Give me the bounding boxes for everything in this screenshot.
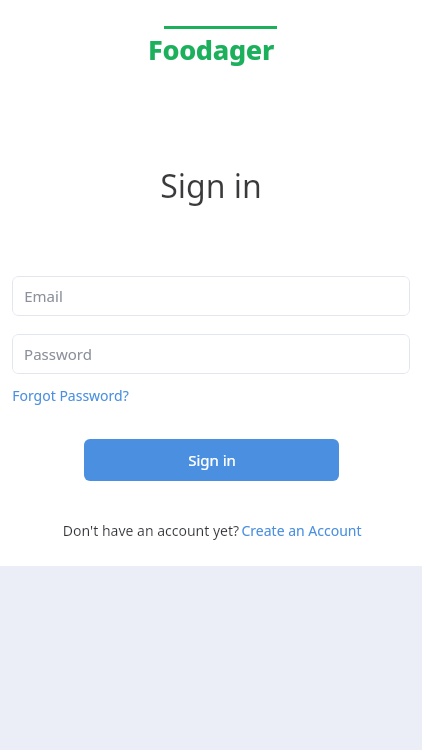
button[interactable]: Password bbox=[12, 334, 410, 374]
staticText: Forgot Password? bbox=[12, 386, 129, 405]
staticText: Sign in bbox=[188, 450, 236, 470]
staticText: Foodager bbox=[148, 31, 274, 68]
button[interactable]: Foodager bbox=[141, 24, 281, 70]
staticText: Email bbox=[24, 286, 63, 306]
staticText: Sign in bbox=[160, 164, 262, 208]
button[interactable]: Forgot Password? bbox=[12, 384, 129, 407]
button[interactable]: Email bbox=[12, 276, 410, 316]
button[interactable]: Create an Account bbox=[241, 519, 362, 542]
staticText: Don't have an account yet? bbox=[61, 521, 241, 540]
staticText: Password bbox=[24, 344, 92, 364]
button[interactable]: Sign in bbox=[84, 439, 339, 481]
staticText: Create an Account bbox=[241, 521, 362, 540]
